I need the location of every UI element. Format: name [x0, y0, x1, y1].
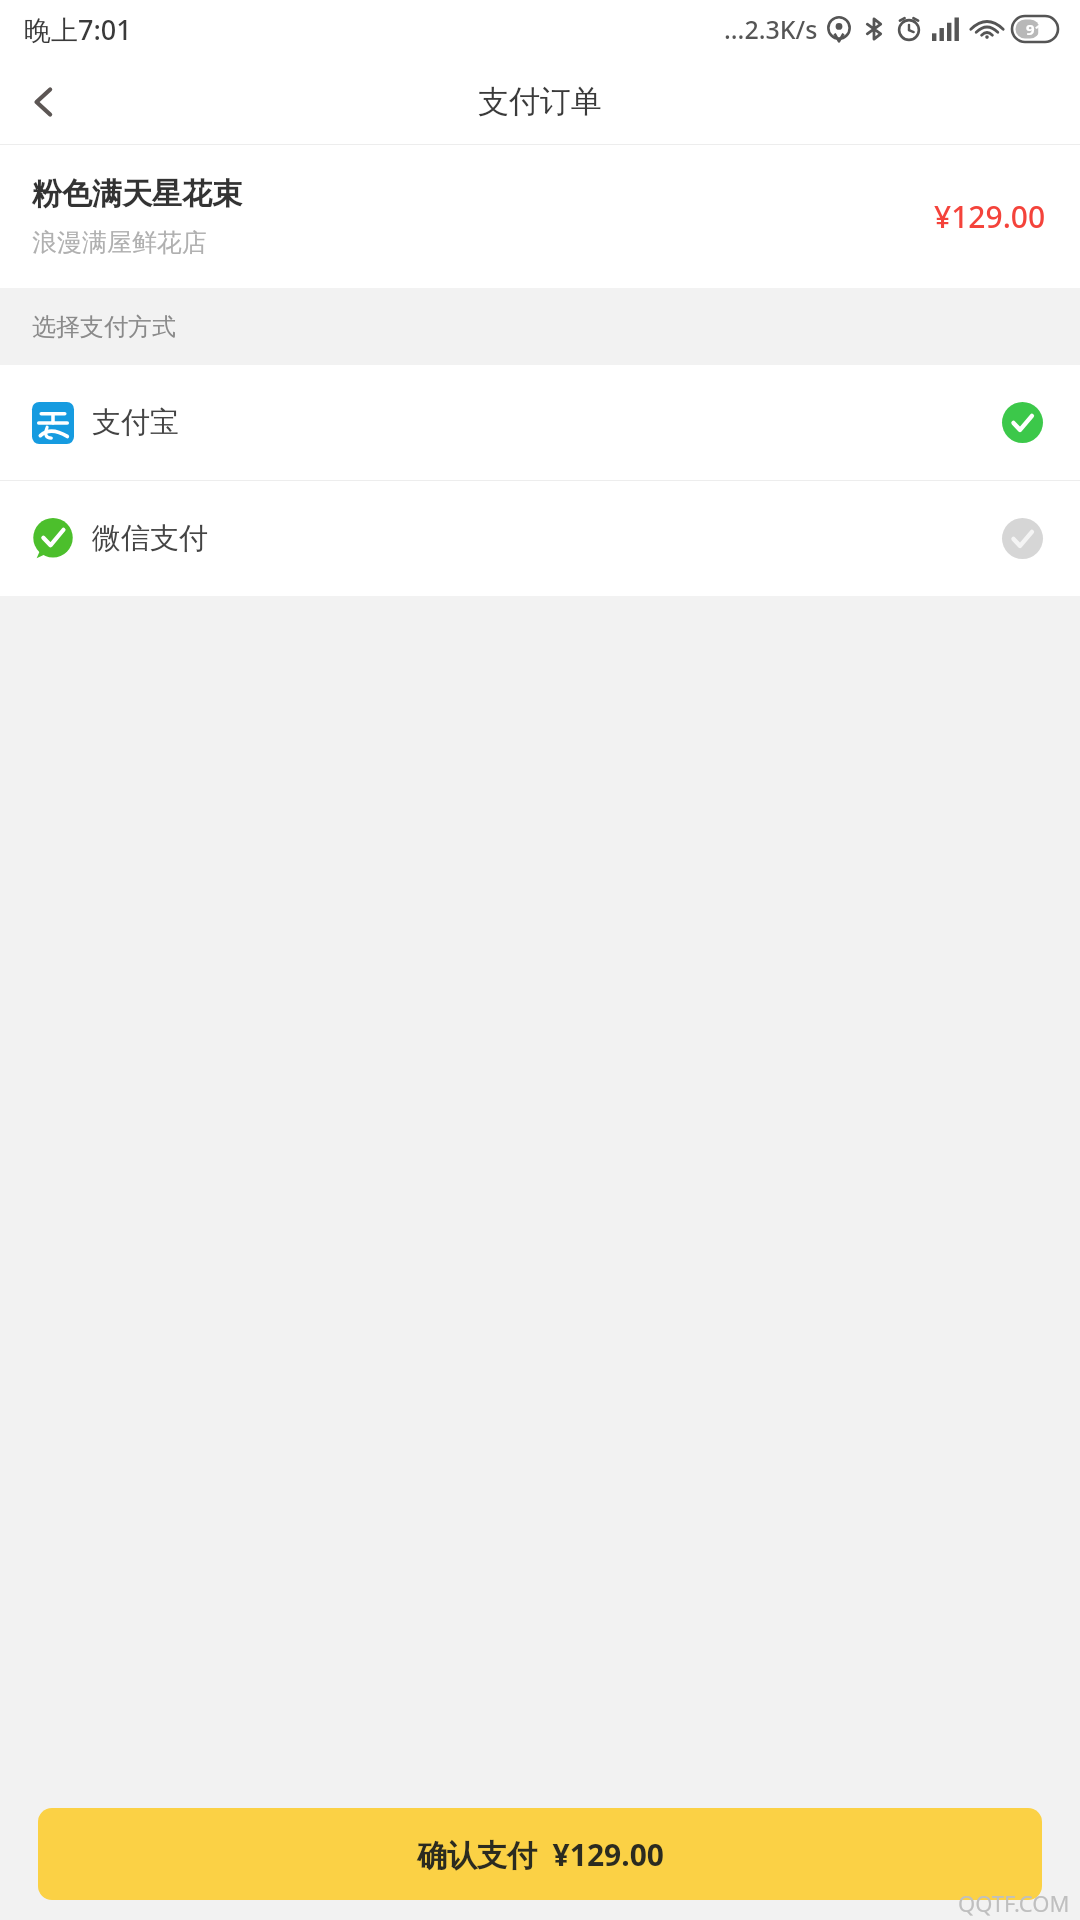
staticText: 选择支付方式: [32, 312, 176, 342]
staticText: 粉色满天星花束: [32, 175, 242, 213]
button[interactable]: 确认支付 ¥129.00: [38, 1808, 1042, 1900]
staticText: QQTF.COM: [958, 1888, 1070, 1918]
staticText: ...2.3K/s: [724, 12, 818, 46]
staticText: 支付宝: [92, 404, 179, 441]
button[interactable]: 微信支付: [0, 481, 1080, 596]
staticText: 确认支付 ¥129.00: [417, 1834, 664, 1875]
staticText: ¥129.00: [934, 196, 1046, 237]
staticText: 浪漫满屋鲜花店: [32, 227, 207, 258]
staticText: 支付订单: [478, 82, 602, 121]
staticText: 微信支付: [92, 520, 208, 557]
button[interactable]: 支付宝: [0, 365, 1080, 480]
button[interactable]: 返回: [0, 58, 88, 145]
staticText: 91: [1026, 19, 1044, 39]
staticText: 晚上7:01: [24, 11, 132, 48]
